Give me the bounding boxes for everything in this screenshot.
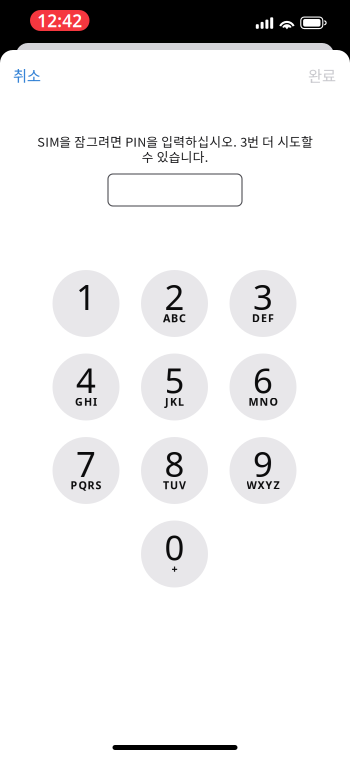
staticText: 1 [76,273,96,319]
staticText: 4 [76,357,96,403]
staticText: G H I [75,394,97,409]
button[interactable]: 3 [219,270,307,337]
staticText: 6 [253,357,273,403]
staticText: 12:42 [37,9,82,32]
button[interactable]: 완료 [295,53,349,97]
staticText: 완료 [308,64,336,86]
button[interactable]: 2 [130,270,219,337]
button[interactable]: 1 [42,270,130,337]
staticText: 0 [164,524,184,570]
staticText: T U V [163,478,186,492]
staticText: M N O [248,394,277,409]
button[interactable]: 8 [130,437,219,504]
staticText: 5 [164,357,184,403]
staticText: 취소 [13,64,41,86]
staticText: A B C [163,311,186,325]
button[interactable]: 7 [42,437,130,504]
staticText: 7 [76,440,96,486]
staticText: J K L [165,394,184,409]
button[interactable]: 6 [219,353,307,420]
staticText: 9 [253,440,273,486]
button[interactable]: 9 [219,437,307,504]
staticText: SIM을 잠그려면 PIN을 입력하십시오. 3번 더 시도할 수 있습니다. [37,132,313,166]
staticText: W X Y Z [246,478,279,492]
staticText: D E F [252,311,274,325]
staticText: 8 [164,440,184,486]
button[interactable]: 취소 [0,53,54,97]
staticText: P Q R S [70,478,101,492]
staticText: 3 [253,273,273,319]
staticText: 2 [164,273,184,319]
button[interactable]: 0 [130,520,219,587]
button[interactable]: 5 [130,353,219,420]
staticText: + [171,561,177,576]
button[interactable]: 4 [42,353,130,420]
